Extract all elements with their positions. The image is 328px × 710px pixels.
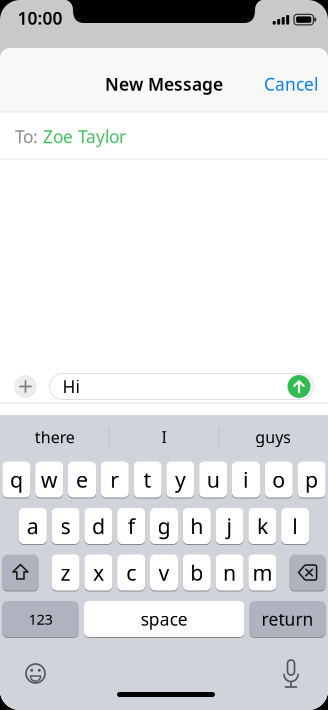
staticText: New Message xyxy=(105,72,223,95)
staticText: a xyxy=(27,512,39,540)
staticText: To: xyxy=(15,125,38,148)
staticText: z xyxy=(61,558,71,587)
button[interactable]: Dictate xyxy=(279,660,303,686)
staticText: space xyxy=(141,607,188,630)
staticText: k xyxy=(257,512,268,540)
button[interactable]: n xyxy=(216,554,244,590)
button[interactable]: j xyxy=(216,508,244,544)
staticText: p xyxy=(305,465,318,494)
staticText: I xyxy=(161,426,166,448)
button[interactable]: i xyxy=(232,461,260,497)
staticText: b xyxy=(190,558,203,587)
staticText: s xyxy=(61,512,71,540)
button[interactable]: l xyxy=(281,508,309,544)
staticText: n xyxy=(223,558,236,587)
button[interactable]: h xyxy=(183,508,211,544)
button[interactable]: Cancel xyxy=(260,67,322,101)
staticText: m xyxy=(252,558,272,587)
staticText: j xyxy=(227,512,233,540)
button[interactable]: f xyxy=(117,508,145,544)
button[interactable]: there xyxy=(1,417,109,456)
staticText: c xyxy=(126,558,136,587)
button[interactable]: Add attachment xyxy=(14,375,37,398)
button[interactable]: o xyxy=(265,461,293,497)
staticText: o xyxy=(272,465,285,494)
staticText: there xyxy=(35,426,75,448)
staticText: v xyxy=(158,558,169,587)
button[interactable]: u xyxy=(199,461,227,497)
button[interactable]: guys xyxy=(219,417,327,456)
button[interactable]: space xyxy=(84,601,244,637)
staticText: 123 xyxy=(28,609,52,629)
staticText: l xyxy=(292,512,298,540)
button[interactable]: Emoji xyxy=(24,662,46,684)
staticText: u xyxy=(207,465,220,494)
button[interactable]: To: xyxy=(0,113,328,159)
staticText: w xyxy=(41,465,58,494)
button[interactable]: I xyxy=(110,417,218,456)
staticText: 10:00 xyxy=(17,6,62,29)
button[interactable]: Delete xyxy=(290,554,326,590)
staticText: r xyxy=(110,465,119,494)
staticText: t xyxy=(144,465,152,494)
button[interactable]: c xyxy=(117,554,145,590)
staticText: return xyxy=(262,607,314,630)
button[interactable]: e xyxy=(68,461,96,497)
staticText: h xyxy=(190,512,203,540)
button[interactable]: p xyxy=(298,461,326,497)
staticText: y xyxy=(175,465,186,494)
button[interactable]: a xyxy=(19,508,47,544)
button[interactable]: return xyxy=(250,601,326,637)
staticText: q xyxy=(10,465,23,494)
staticText: d xyxy=(92,512,105,540)
staticText: g xyxy=(157,512,170,540)
button[interactable]: x xyxy=(84,554,112,590)
button[interactable]: k xyxy=(248,508,276,544)
button[interactable]: 123 xyxy=(2,601,78,637)
staticText: Cancel xyxy=(264,72,318,95)
staticText: e xyxy=(76,465,88,494)
button[interactable]: v xyxy=(150,554,178,590)
button[interactable]: b xyxy=(183,554,211,590)
staticText: guys xyxy=(255,426,291,448)
button[interactable]: d xyxy=(84,508,112,544)
button[interactable]: Send xyxy=(287,375,310,398)
button[interactable]: Hi xyxy=(49,373,313,399)
staticText: x xyxy=(93,558,104,587)
button[interactable]: s xyxy=(52,508,80,544)
button[interactable]: w xyxy=(35,461,63,497)
button[interactable]: Shift xyxy=(2,554,38,590)
staticText: f xyxy=(128,512,135,540)
staticText: i xyxy=(243,465,249,494)
button[interactable]: m xyxy=(248,554,276,590)
button[interactable]: g xyxy=(150,508,178,544)
staticText: Zoe Taylor xyxy=(43,125,126,148)
staticText: Hi xyxy=(62,375,79,398)
button[interactable]: r xyxy=(101,461,129,497)
button[interactable]: t xyxy=(134,461,162,497)
button[interactable]: z xyxy=(52,554,80,590)
button[interactable]: q xyxy=(2,461,30,497)
button[interactable]: y xyxy=(166,461,194,497)
